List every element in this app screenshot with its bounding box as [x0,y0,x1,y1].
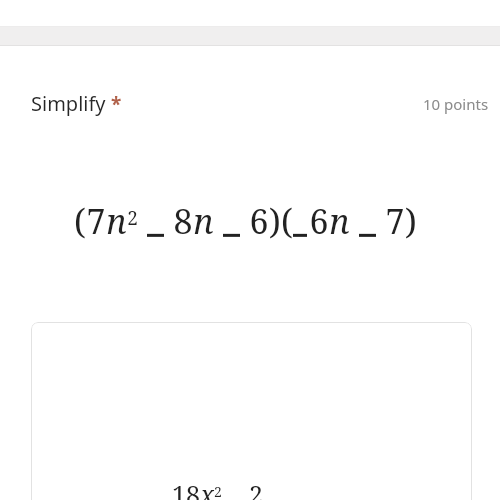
staticText: 8 [173,198,193,244]
staticText: 10 points [423,94,489,114]
staticText: ( [74,198,86,244]
staticText: 8 [186,477,200,500]
staticText: 2 [214,482,222,500]
staticText: 6 [249,198,269,244]
staticText: n [193,198,214,244]
staticText: 2 [127,205,138,231]
staticText: Simplify [31,90,106,117]
staticText: n [106,198,127,244]
button[interactable]: Simplify [0,86,500,120]
button[interactable]: 1 [31,322,472,500]
staticText: 1 [172,477,186,500]
staticText: ( [281,198,293,244]
staticText: x [200,477,214,500]
staticText: n [329,198,350,244]
staticText: * [111,91,122,117]
staticText: ) [269,198,281,244]
staticText: 6 [309,198,329,244]
staticText: ) [405,198,417,244]
staticText: 7 [86,198,106,244]
staticText: 2 [249,477,263,500]
staticText: 7 [385,198,405,244]
